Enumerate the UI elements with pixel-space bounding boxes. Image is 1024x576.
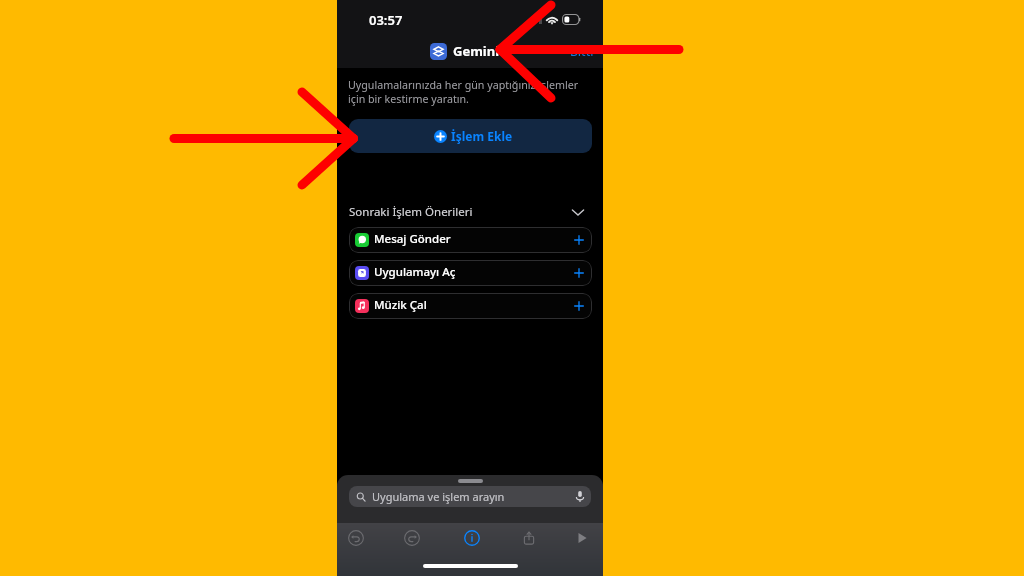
button[interactable]: Share [518, 527, 540, 549]
button[interactable]: Müzik Çal [349, 293, 592, 319]
staticText: Sonraki İşlem Önerileri [349, 204, 473, 220]
button[interactable]: Bitti [570, 43, 594, 59]
button[interactable]: Undo [345, 527, 367, 549]
button[interactable]: Play [571, 527, 593, 549]
button[interactable]: Sonraki İşlem Önerileri [349, 203, 592, 221]
button[interactable]: Info [461, 527, 483, 549]
button[interactable]: Mesaj Gönder [349, 227, 592, 253]
staticText: Mesaj Gönder [374, 231, 451, 247]
staticText: Uygulamayı Aç [374, 264, 456, 280]
staticText: Gemini [453, 42, 500, 60]
button[interactable]: Uygulamayı Aç [349, 260, 592, 286]
button[interactable]: Uygulama ve işlem arayın [349, 486, 591, 507]
button[interactable]: Redo [401, 527, 423, 549]
staticText: İşlem Ekle [451, 128, 513, 144]
staticText: Uygulama ve işlem arayın [372, 489, 505, 504]
staticText: Uygulamalarınızda her gün yaptığınız işl… [348, 78, 592, 106]
staticText: Müzik Çal [374, 297, 427, 313]
staticText: 03:57 [369, 11, 403, 29]
button[interactable]: İşlem Ekle [349, 119, 592, 153]
